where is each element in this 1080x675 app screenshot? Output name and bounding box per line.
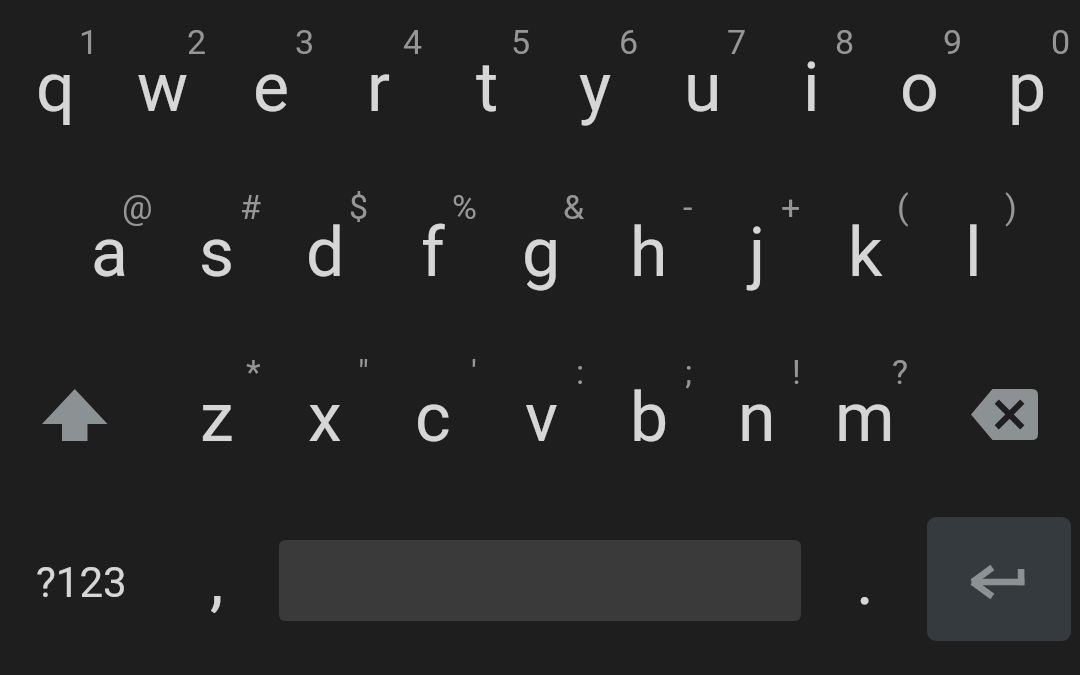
- staticText: l: [965, 213, 982, 293]
- staticText: i: [803, 48, 820, 128]
- staticText: a: [91, 213, 128, 293]
- staticText: q: [36, 48, 75, 128]
- staticText: n: [738, 378, 776, 458]
- staticText: 1: [79, 22, 99, 62]
- staticText: g: [522, 213, 561, 293]
- staticText: v: [525, 378, 558, 458]
- button[interactable]: 7: [649, 0, 757, 165]
- button[interactable]: Enter: [927, 517, 1071, 641]
- staticText: d: [306, 213, 345, 293]
- staticText: 4: [403, 22, 423, 62]
- staticText: ,: [210, 540, 224, 620]
- button[interactable]: ;: [595, 330, 703, 495]
- button[interactable]: ?123: [0, 495, 162, 675]
- staticText: 7: [727, 22, 747, 62]
- staticText: 6: [619, 22, 639, 62]
- staticText: p: [1008, 48, 1047, 128]
- button[interactable]: ): [919, 165, 1027, 330]
- button[interactable]: Backspace: [930, 330, 1080, 495]
- button[interactable]: 6: [541, 0, 649, 165]
- staticText: j: [749, 213, 766, 293]
- staticText: t: [476, 48, 499, 128]
- staticText: ?123: [36, 558, 127, 607]
- staticText: 9: [943, 22, 963, 62]
- staticText: x: [308, 378, 342, 458]
- button[interactable]: 5: [433, 0, 541, 165]
- staticText: y: [579, 48, 612, 128]
- button[interactable]: .: [810, 495, 918, 675]
- button[interactable]: :: [487, 330, 595, 495]
- staticText: o: [900, 48, 939, 128]
- staticText: $: [349, 187, 369, 227]
- button[interactable]: ?: [811, 330, 919, 495]
- button[interactable]: !: [703, 330, 811, 495]
- staticText: @: [122, 187, 153, 227]
- staticText: ?: [892, 352, 909, 392]
- button[interactable]: 1: [1, 0, 109, 165]
- staticText: z: [200, 378, 234, 458]
- button[interactable]: -: [595, 165, 703, 330]
- staticText: u: [684, 48, 722, 128]
- staticText: f: [421, 213, 445, 293]
- staticText: .: [856, 541, 874, 621]
- staticText: %: [452, 187, 477, 227]
- button[interactable]: *: [163, 330, 271, 495]
- staticText: 8: [835, 22, 855, 62]
- staticText: ;: [685, 352, 693, 392]
- staticText: ': [471, 352, 477, 392]
- button[interactable]: ,: [162, 495, 270, 675]
- button[interactable]: @: [55, 165, 163, 330]
- staticText: ): [1005, 187, 1017, 227]
- staticText: !: [792, 352, 801, 392]
- button[interactable]: $: [271, 165, 379, 330]
- staticText: 2: [187, 22, 207, 62]
- staticText: 0: [1051, 22, 1071, 62]
- button[interactable]: &: [487, 165, 595, 330]
- staticText: m: [835, 378, 895, 458]
- button[interactable]: ": [271, 330, 379, 495]
- staticText: 5: [511, 22, 531, 62]
- button[interactable]: ': [379, 330, 487, 495]
- button[interactable]: 0: [973, 0, 1080, 165]
- staticText: ": [358, 352, 369, 392]
- staticText: w: [137, 48, 189, 128]
- staticText: :: [576, 352, 585, 392]
- staticText: k: [848, 213, 883, 293]
- staticText: -: [683, 187, 693, 227]
- button[interactable]: #: [163, 165, 271, 330]
- button[interactable]: 4: [325, 0, 433, 165]
- staticText: r: [367, 48, 391, 128]
- staticText: 3: [295, 22, 315, 62]
- button[interactable]: Shift: [0, 330, 150, 495]
- staticText: e: [253, 48, 290, 128]
- button[interactable]: 9: [865, 0, 973, 165]
- staticText: h: [630, 213, 668, 293]
- staticText: +: [781, 187, 801, 227]
- staticText: (: [897, 187, 909, 227]
- staticText: &: [563, 187, 585, 227]
- staticText: b: [630, 378, 669, 458]
- button[interactable]: 8: [757, 0, 865, 165]
- button[interactable]: +: [703, 165, 811, 330]
- staticText: #: [240, 187, 261, 227]
- staticText: c: [415, 378, 451, 458]
- button[interactable]: 2: [109, 0, 217, 165]
- staticText: s: [199, 213, 235, 293]
- button[interactable]: %: [379, 165, 487, 330]
- button[interactable]: (: [811, 165, 919, 330]
- staticText: *: [246, 352, 261, 392]
- button[interactable]: 3: [217, 0, 325, 165]
